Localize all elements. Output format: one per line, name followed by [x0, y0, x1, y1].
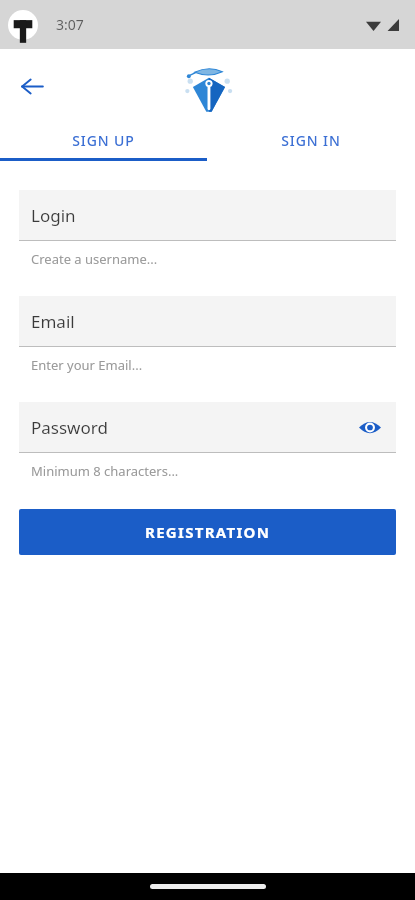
- button[interactable]: SIGN UP: [0, 122, 207, 158]
- staticText: Login: [31, 204, 76, 227]
- staticText: SIGN UP: [72, 131, 135, 150]
- button[interactable]: REGISTRATION: [19, 509, 396, 555]
- staticText: REGISTRATION: [145, 522, 271, 542]
- button[interactable]: Email: [19, 296, 396, 346]
- button[interactable]: Show password: [352, 409, 388, 445]
- button[interactable]: Password: [19, 402, 396, 452]
- staticText: Password: [31, 416, 108, 439]
- staticText: SIGN IN: [281, 131, 341, 150]
- staticText: Minimum 8 characters...: [31, 462, 179, 480]
- staticText: Email: [31, 310, 75, 333]
- staticText: Enter your Email...: [31, 356, 143, 374]
- button[interactable]: Login: [19, 190, 396, 240]
- button[interactable]: Back: [10, 64, 54, 108]
- staticText: 3:07: [56, 15, 84, 34]
- staticText: Create a username...: [31, 250, 158, 268]
- button[interactable]: SIGN IN: [207, 122, 415, 158]
